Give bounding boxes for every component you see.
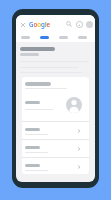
- button[interactable]: Help: [74, 19, 84, 29]
- button[interactable]: [22, 139, 89, 157]
- button[interactable]: Account: [84, 19, 94, 29]
- button[interactable]: [73, 36, 92, 42]
- button[interactable]: [22, 121, 89, 139]
- button[interactable]: [22, 157, 89, 174]
- staticText: Google: [29, 20, 51, 28]
- button[interactable]: [35, 36, 54, 42]
- button[interactable]: Search: [64, 19, 74, 29]
- button[interactable]: [54, 36, 73, 42]
- button[interactable]: [16, 36, 35, 42]
- button[interactable]: Close: [18, 20, 27, 29]
